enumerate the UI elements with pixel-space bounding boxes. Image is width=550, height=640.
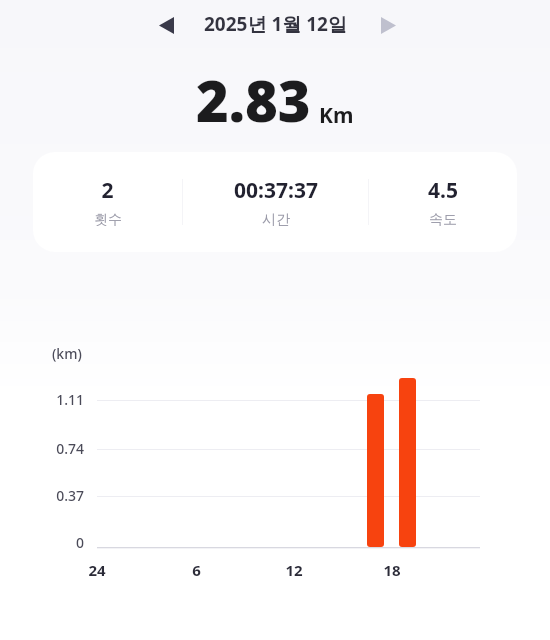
staticText: 4.5 [428, 176, 458, 205]
staticText: 0 [75, 533, 84, 552]
button[interactable]: Previous day [148, 11, 184, 39]
staticText: 0.37 [56, 486, 84, 505]
staticText: Km [319, 101, 354, 130]
button[interactable]: 2025년 1월 12일 [204, 11, 347, 37]
staticText: (km) [52, 344, 82, 363]
staticText: 12 [285, 560, 303, 580]
staticText: 00:37:37 [234, 176, 318, 205]
button[interactable]: Next day [370, 11, 406, 39]
staticText: 0.74 [56, 439, 84, 458]
staticText: 18 [383, 560, 401, 580]
staticText: 6 [192, 560, 201, 580]
staticText: 2 [101, 176, 114, 205]
staticText: 24 [88, 560, 106, 580]
button[interactable]: 2 [33, 152, 517, 252]
staticText: 속도 [429, 211, 457, 229]
staticText: 2.83 [196, 62, 311, 138]
staticText: 시간 [262, 211, 290, 229]
staticText: 1.11 [56, 390, 84, 409]
staticText: 횟수 [94, 211, 122, 229]
